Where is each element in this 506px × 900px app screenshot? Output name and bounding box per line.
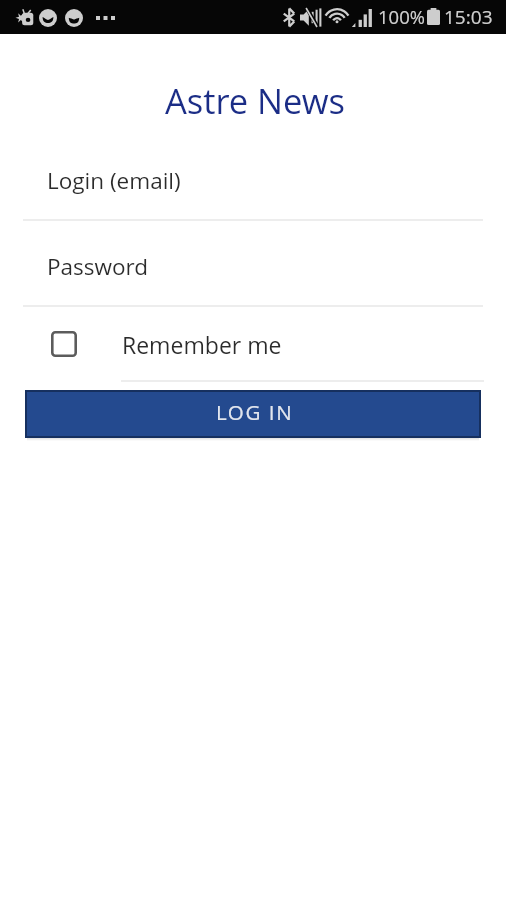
staticText: 15:03 [444,4,493,30]
other: Battery full [427,8,440,25]
staticText: Password [47,251,149,282]
button[interactable]: Password [23,241,483,307]
other: More notifications [96,16,115,20]
other: Debug notification [16,9,34,26]
staticText: Login (email) [47,165,181,196]
staticText: 100% [378,4,425,29]
other: Mobile signal [355,9,375,27]
other: Bluetooth on [283,8,295,27]
other: Message notification [39,9,57,27]
other: Wi-Fi connected [327,8,347,23]
button[interactable]: LOG IN [27,392,479,436]
button[interactable]: Login (email) [23,155,483,221]
staticText: Astre News [2,77,506,124]
other: Sound muted [300,8,321,27]
other: Remember me checkbox [51,331,77,357]
staticText: Remember me [122,329,282,360]
other: Message notification [65,9,83,27]
button[interactable]: Remember me checkbox [40,326,295,362]
staticText: LOG IN [216,398,294,426]
